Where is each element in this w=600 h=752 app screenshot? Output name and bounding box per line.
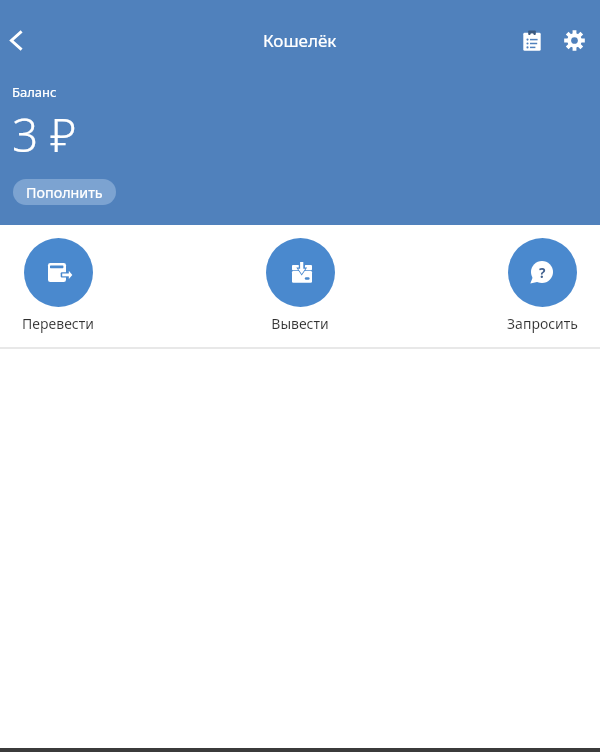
button[interactable]: Перевести	[8, 238, 108, 333]
button[interactable]: Вывести	[250, 238, 350, 333]
staticText: Вывести	[271, 314, 329, 333]
button[interactable]: History	[512, 20, 552, 60]
button[interactable]: Пополнить	[13, 179, 116, 205]
staticText: ?	[539, 264, 546, 282]
button[interactable]: ?	[492, 238, 592, 333]
button[interactable]: Back	[0, 18, 38, 62]
staticText: Перевести	[22, 314, 94, 333]
button[interactable]: Settings	[554, 20, 594, 60]
staticText: Пополнить	[26, 183, 103, 202]
staticText: Кошелёк	[263, 29, 337, 52]
staticText: Запросить	[507, 314, 578, 333]
staticText: Баланс	[12, 83, 57, 101]
staticText: 3 ₽	[12, 103, 77, 166]
